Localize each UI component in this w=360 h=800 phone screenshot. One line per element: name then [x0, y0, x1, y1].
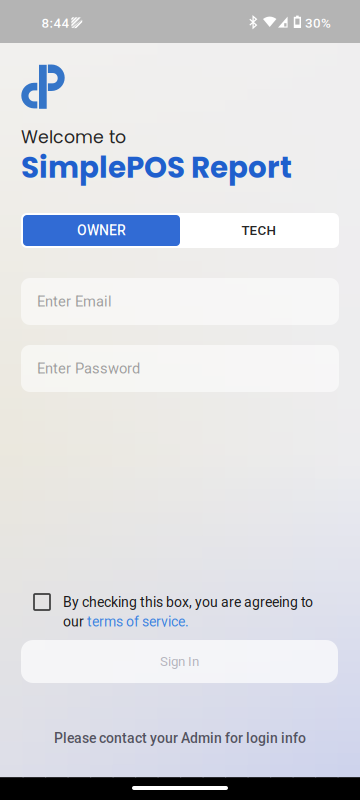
button[interactable]: terms of service.	[87, 613, 189, 630]
button[interactable]: OWNER	[23, 215, 180, 246]
staticText: SimplePOS Report	[21, 147, 292, 188]
staticText: our	[63, 613, 87, 630]
staticText: Welcome to	[21, 125, 126, 149]
staticText: OWNER	[77, 222, 126, 239]
staticText: Enter Password	[37, 360, 140, 377]
staticText: 30%	[305, 15, 331, 31]
staticText: Please contact your Admin for login info	[54, 730, 306, 746]
staticText: By checking this box, you are agreeing t…	[63, 594, 313, 610]
staticText: 8:44	[41, 15, 69, 31]
staticText: Sign In	[160, 654, 199, 669]
staticText: terms of service.	[87, 613, 189, 630]
button[interactable]: Enter Password	[21, 345, 339, 392]
button[interactable]: TECH	[180, 215, 337, 246]
button[interactable]: Enter Email	[21, 278, 339, 325]
staticText: TECH	[241, 223, 275, 238]
button[interactable]: Agree to the terms of service	[34, 594, 50, 610]
button[interactable]: Sign In	[21, 640, 338, 683]
staticText: Enter Email	[37, 293, 112, 310]
